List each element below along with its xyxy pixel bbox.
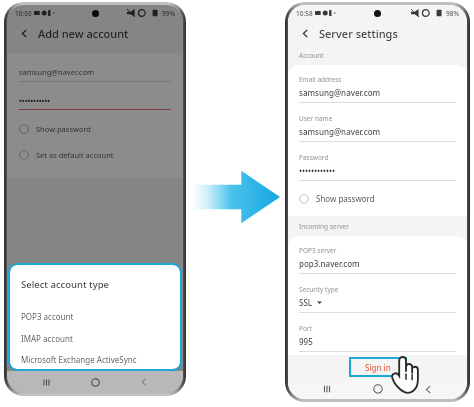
staticText: samsung@naver.com: [19, 67, 94, 77]
button[interactable]: Sign in: [349, 357, 407, 377]
staticText: IMAP account: [21, 333, 73, 344]
button[interactable]: IMAP account: [21, 327, 169, 349]
staticText: Incoming server: [299, 222, 349, 231]
button[interactable]: Show password: [19, 120, 171, 138]
staticText: Add new account: [38, 26, 129, 41]
staticText: POP3 server: [299, 246, 337, 255]
staticText: Email address: [299, 75, 342, 84]
staticText: 10:58: [296, 9, 313, 18]
staticText: Select account type: [21, 278, 110, 291]
button[interactable]: Back: [134, 372, 154, 392]
button[interactable]: Back: [417, 379, 439, 399]
staticText: Security type: [299, 285, 339, 294]
staticText: Set as default account: [36, 150, 114, 160]
staticText: Show password: [36, 124, 91, 134]
staticText: 98%: [446, 9, 459, 18]
staticText: Microsoft Exchange ActiveSync: [21, 354, 137, 365]
button[interactable]: Home: [85, 372, 105, 392]
staticText: 10:56: [15, 9, 32, 18]
button[interactable]: Recents: [36, 372, 56, 392]
staticText: ••••••••••••: [299, 165, 336, 176]
staticText: 99%: [162, 9, 175, 18]
staticText: SSL: [299, 297, 313, 308]
staticText: pop3.naver.com: [299, 258, 360, 269]
staticText: Port: [299, 324, 312, 333]
button[interactable]: Show password: [299, 190, 456, 207]
button[interactable]: Back: [16, 25, 32, 41]
staticText: samsung@naver.com: [299, 87, 381, 98]
staticText: 995: [299, 336, 313, 347]
staticText: samsung@naver.com: [299, 126, 381, 137]
staticText: Sign in: [365, 362, 391, 373]
staticText: Account: [299, 51, 324, 60]
staticText: •••••••••••: [19, 96, 51, 106]
staticText: Show password: [316, 193, 375, 204]
button[interactable]: Set as default account: [19, 146, 171, 164]
button[interactable]: Microsoft Exchange ActiveSync: [21, 349, 169, 369]
button[interactable]: POP3 account: [21, 305, 169, 327]
staticText: Password: [299, 153, 329, 162]
button[interactable]: Home: [367, 379, 389, 399]
staticText: POP3 account: [21, 311, 74, 322]
staticText: Server settings: [319, 26, 398, 41]
staticText: User name: [299, 114, 333, 123]
button[interactable]: Back: [297, 25, 313, 41]
button[interactable]: Recents: [316, 379, 338, 399]
